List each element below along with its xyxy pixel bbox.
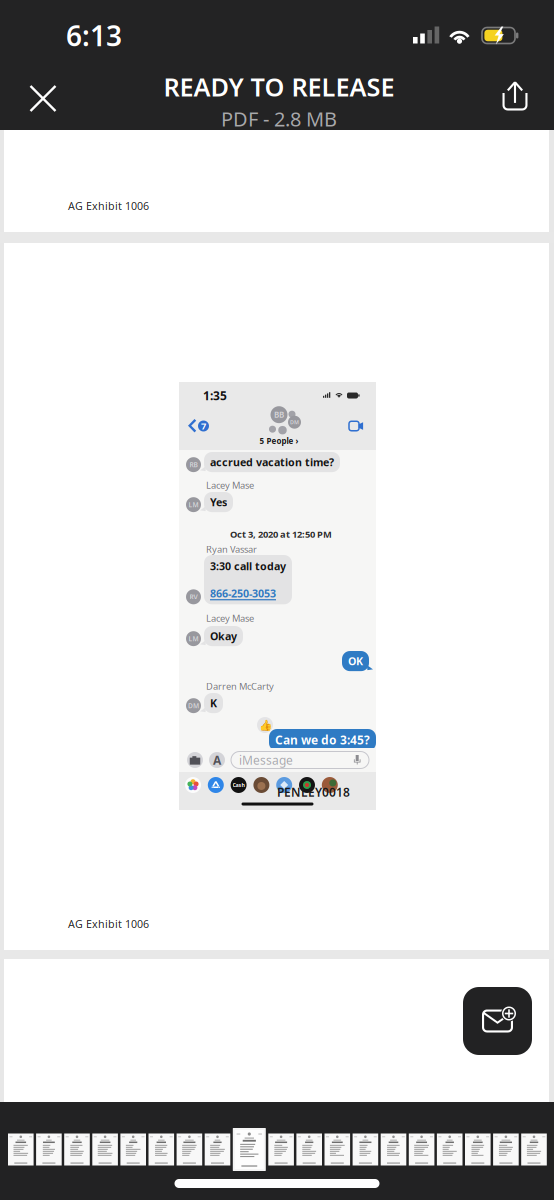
staticText: 866-250-3053 bbox=[210, 586, 276, 600]
button[interactable]: Page 16 bbox=[437, 1133, 462, 1165]
staticText: Can we do 3:45? bbox=[275, 732, 370, 748]
staticText: 1:35 bbox=[203, 387, 227, 403]
button[interactable]: Page 11 bbox=[296, 1133, 322, 1165]
button[interactable]: Page 5 bbox=[120, 1133, 146, 1165]
staticText: LM bbox=[188, 500, 198, 509]
button[interactable]: Page 10 bbox=[268, 1133, 294, 1165]
staticText: iMessage bbox=[239, 752, 293, 768]
staticText: Oct 3, 2020 at 12:50 PM bbox=[230, 528, 332, 540]
button[interactable]: Page 15 bbox=[409, 1133, 434, 1165]
button[interactable]: Page 17 bbox=[465, 1133, 491, 1165]
staticText: DM bbox=[188, 701, 199, 710]
staticText: LM bbox=[188, 634, 198, 643]
staticText: RV bbox=[189, 592, 197, 601]
staticText: Okay bbox=[210, 629, 237, 643]
staticText: AG Exhibit 1006 bbox=[68, 917, 149, 931]
staticText: Darren McCarty bbox=[206, 680, 274, 692]
staticText: Lacey Mase bbox=[206, 479, 254, 491]
staticText: AG Exhibit 1006 bbox=[68, 199, 149, 213]
staticText: 6:13 bbox=[66, 17, 122, 54]
staticText: 👍 bbox=[258, 719, 271, 731]
button[interactable]: Page 8 bbox=[205, 1133, 230, 1165]
button[interactable]: New message bbox=[463, 987, 532, 1055]
staticText: BB bbox=[274, 409, 284, 420]
button[interactable]: Page 2 bbox=[36, 1133, 62, 1165]
button[interactable]: Page 18 bbox=[493, 1133, 519, 1165]
button[interactable]: Page 1 bbox=[8, 1133, 34, 1165]
staticText: PDF - 2.8 MB bbox=[221, 105, 337, 132]
staticText: 7 bbox=[201, 420, 206, 432]
button[interactable]: Page 14 bbox=[381, 1133, 406, 1165]
staticText: Yes bbox=[210, 495, 227, 509]
button[interactable]: Page 6 bbox=[148, 1133, 174, 1165]
staticText: Cash bbox=[233, 781, 245, 789]
button[interactable]: Page 19 bbox=[521, 1133, 547, 1165]
button[interactable]: Page 3 bbox=[64, 1133, 90, 1165]
staticText: A bbox=[213, 752, 221, 768]
staticText: Ryan Vassar bbox=[206, 543, 257, 555]
staticText: DM bbox=[290, 419, 299, 426]
button[interactable]: Page 13 bbox=[353, 1133, 378, 1165]
staticText: PENLEY0018 bbox=[277, 784, 350, 800]
button[interactable]: Page 12 bbox=[324, 1133, 350, 1165]
staticText: 3:30 call today bbox=[210, 559, 286, 573]
button[interactable]: Page 9 bbox=[233, 1128, 266, 1171]
staticText: READY TO RELEASE bbox=[163, 70, 394, 103]
staticText: 5 People › bbox=[259, 436, 298, 446]
staticText: RB bbox=[189, 460, 197, 469]
staticText: K bbox=[210, 696, 217, 710]
staticText: OK bbox=[348, 654, 363, 668]
button[interactable]: Page 7 bbox=[177, 1133, 202, 1165]
button[interactable]: Close bbox=[8, 60, 74, 131]
staticText: Lacey Mase bbox=[206, 612, 254, 624]
button[interactable]: Page 4 bbox=[92, 1133, 118, 1165]
button[interactable]: Share bbox=[484, 63, 546, 129]
staticText: accrued vacation time? bbox=[210, 455, 334, 469]
